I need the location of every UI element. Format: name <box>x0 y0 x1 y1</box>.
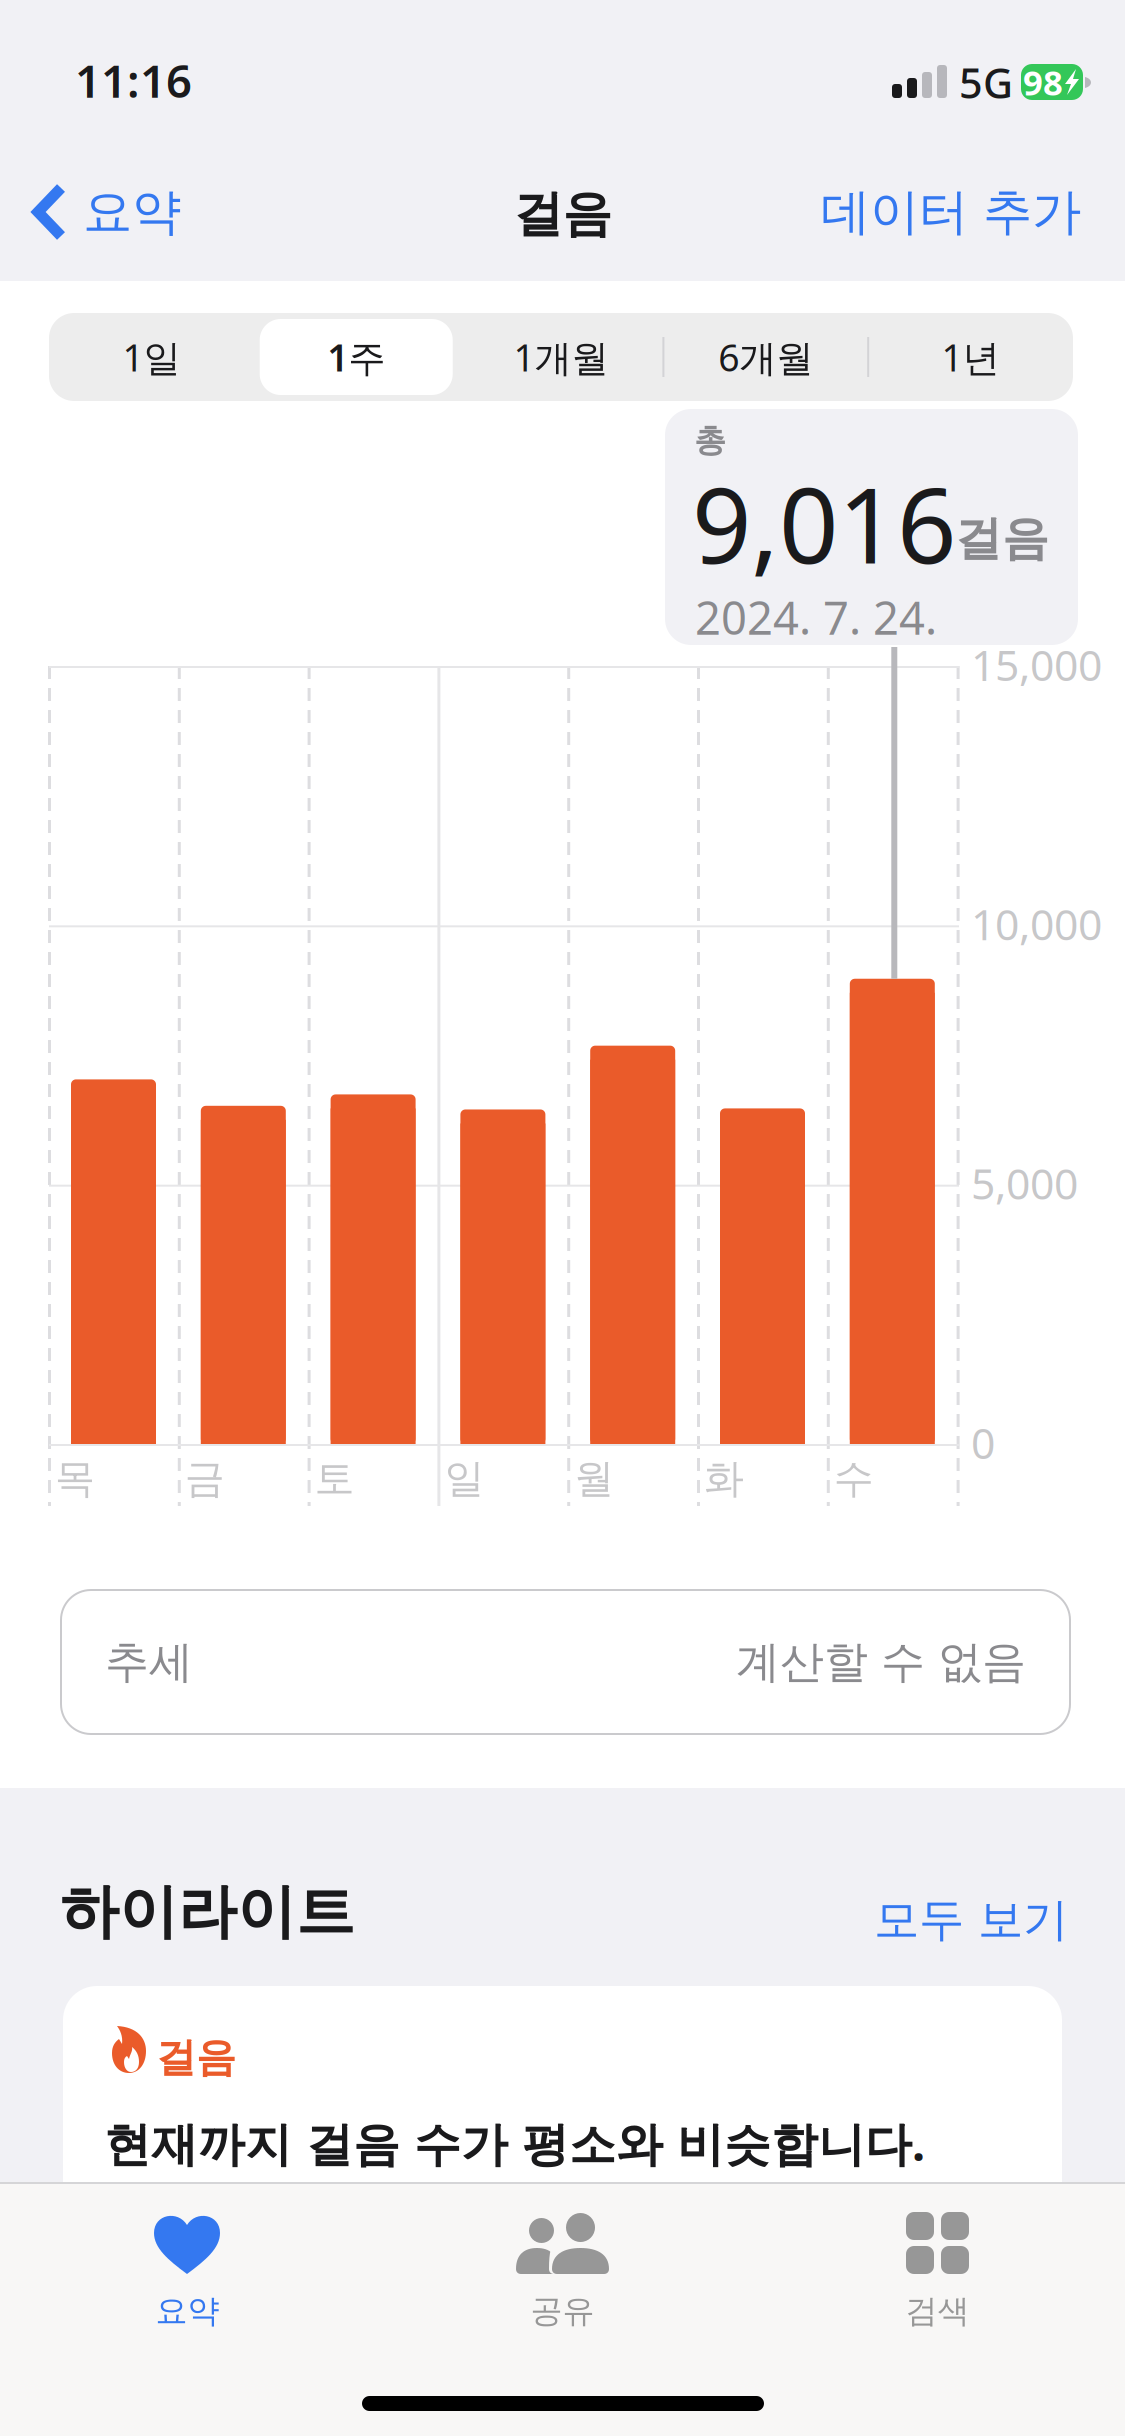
staticText: 10,000 <box>971 895 1102 952</box>
button[interactable]: 일 6450 걸음 <box>460 1109 545 1444</box>
button[interactable]: 요약 <box>30 170 300 254</box>
staticText: 15,000 <box>971 636 1102 693</box>
button[interactable]: 공유 <box>375 2206 750 2336</box>
staticText: 1년 <box>942 332 1000 382</box>
staticText: 추세 <box>105 1635 193 1689</box>
staticText: 5G <box>959 55 1013 110</box>
button[interactable]: 수 8970 걸음 <box>850 979 935 1444</box>
staticText: 0 <box>971 1414 995 1471</box>
staticText: 걸음 <box>156 2033 236 2082</box>
staticText: 걸음 <box>513 184 611 244</box>
button[interactable]: 데이터 추가 <box>744 170 1081 254</box>
staticText: 6개월 <box>718 332 813 382</box>
button[interactable]: 월 7680 걸음 <box>590 1046 675 1444</box>
button[interactable]: 요약 <box>0 2206 375 2336</box>
staticText: 5,000 <box>971 1155 1078 1211</box>
staticText: 현재까지 걸음 수가 평소와 비슷합니다. <box>104 2112 925 2174</box>
button[interactable]: 금 6520 걸음 <box>201 1106 286 1444</box>
button[interactable]: 모두 보기 <box>874 1892 1068 1948</box>
staticText: 데이터 추가 <box>821 182 1081 242</box>
button[interactable]: 화 6470 걸음 <box>720 1108 805 1444</box>
staticText: 1주 <box>327 332 385 382</box>
button[interactable]: 1일 <box>49 313 254 401</box>
staticText: 공유 <box>530 2291 594 2331</box>
staticText: 11:16 <box>75 50 192 110</box>
staticText: 9,016 <box>692 454 956 592</box>
staticText: 검색 <box>905 2291 969 2331</box>
button[interactable]: 걸음 <box>63 1986 1062 2316</box>
staticText: 하이라이트 <box>60 1876 355 1948</box>
staticText: 토 <box>315 1454 355 1503</box>
staticText: 1일 <box>122 332 180 382</box>
button[interactable]: 목 7030 걸음 <box>71 1079 156 1444</box>
staticText: 금 <box>185 1454 225 1503</box>
staticText: 98 <box>1023 59 1063 105</box>
staticText: 요약 <box>155 2291 219 2331</box>
staticText: 1개월 <box>513 332 608 382</box>
staticText: 화 <box>704 1454 744 1503</box>
staticText: 월 <box>574 1454 614 1503</box>
staticText: 목 <box>55 1454 95 1503</box>
staticText: 계산할 수 없음 <box>736 1635 1026 1689</box>
staticText: 2024. 7. 24. <box>695 587 937 647</box>
staticText: 총 <box>694 421 726 460</box>
button[interactable]: 6개월 <box>663 313 868 401</box>
staticText: 걸음 <box>955 510 1049 567</box>
staticText: 요약 <box>83 182 181 242</box>
button[interactable]: 토 6740 걸음 <box>331 1094 416 1444</box>
staticText: 수 <box>834 1454 874 1503</box>
button[interactable]: 추세 <box>61 1590 1070 1734</box>
button[interactable]: 1개월 <box>459 313 663 401</box>
button[interactable]: 1주 <box>254 313 459 401</box>
staticText: 모두 보기 <box>874 1892 1068 1948</box>
staticText: 일 <box>444 1454 484 1503</box>
button[interactable]: 검색 <box>750 2206 1125 2336</box>
button[interactable]: 1년 <box>868 313 1073 401</box>
